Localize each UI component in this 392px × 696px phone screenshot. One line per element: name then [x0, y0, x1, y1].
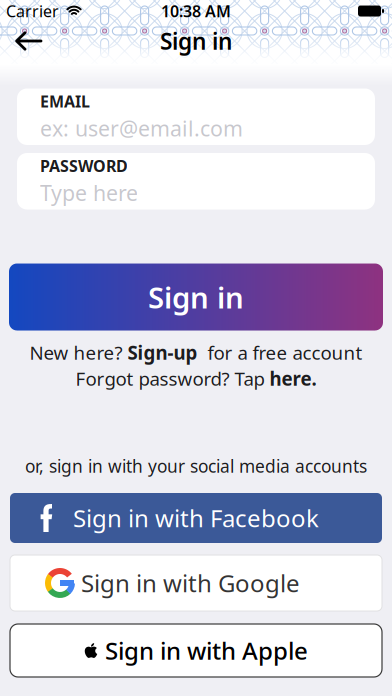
staticText: Sign in with Apple — [105, 635, 308, 666]
staticText: Sign in with Google — [81, 567, 300, 599]
button[interactable]: here. — [269, 366, 316, 391]
staticText: Carrier — [6, 0, 59, 22]
button[interactable]: Sign in with Google — [10, 555, 382, 611]
button[interactable]: Sign-up — [127, 340, 197, 365]
staticText: EMAIL — [40, 91, 90, 112]
staticText: Sign in — [148, 277, 244, 316]
staticText: or, sign in with your social media accou… — [25, 454, 367, 477]
staticText: Sign-up — [127, 340, 197, 365]
staticText: Type here — [40, 179, 138, 207]
staticText: 10:38 AM — [161, 0, 231, 22]
staticText: Sign in — [160, 26, 232, 56]
staticText: for a free account — [197, 340, 362, 365]
staticText: here. — [269, 366, 316, 391]
button[interactable]: EMAIL — [17, 88, 375, 145]
staticText: Forgot password? Tap — [75, 366, 269, 391]
button[interactable]: Sign in — [9, 263, 383, 330]
button[interactable]: Back — [0, 23, 42, 59]
staticText: New here? — [29, 340, 127, 365]
button[interactable]: Sign in with Facebook — [10, 493, 382, 543]
button[interactable]: Sign in with Apple — [10, 624, 382, 677]
staticText: ex: user@email.com — [40, 114, 243, 142]
staticText: PASSWORD — [40, 155, 128, 176]
button[interactable]: PASSWORD — [17, 153, 375, 209]
staticText: Sign in with Facebook — [73, 502, 319, 534]
